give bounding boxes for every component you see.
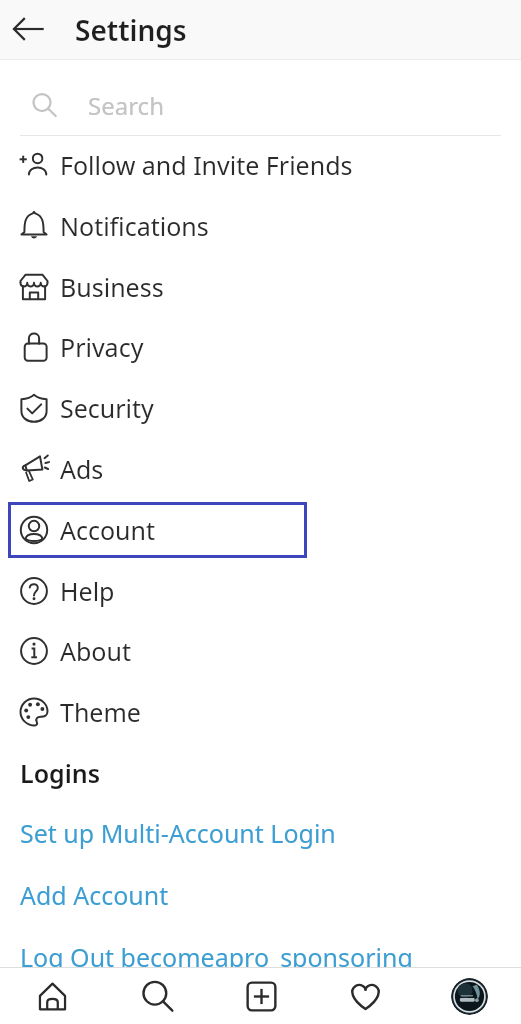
staticText: Follow and Invite Friends — [60, 148, 353, 182]
button[interactable]: New post — [209, 968, 313, 1024]
staticText: About — [60, 634, 131, 668]
staticText: Search — [88, 89, 164, 122]
staticText: Ads — [60, 452, 104, 486]
button[interactable]: Ads — [0, 438, 521, 499]
button[interactable]: Search — [0, 68, 521, 136]
staticText: Notifications — [60, 209, 209, 243]
staticText: Set up Multi-Account Login — [20, 816, 336, 850]
button[interactable]: Help — [0, 560, 521, 621]
button[interactable]: Security — [0, 377, 521, 438]
button[interactable]: Profile — [417, 968, 521, 1024]
staticText: Security — [60, 391, 154, 425]
staticText: Help — [60, 574, 115, 608]
button[interactable]: Privacy — [0, 316, 521, 377]
button[interactable]: About — [0, 620, 521, 681]
button[interactable]: Help — [0, 560, 521, 621]
button[interactable]: Set up Multi-Account Login — [0, 802, 521, 864]
button[interactable]: Theme — [0, 681, 521, 742]
staticText: Account — [60, 513, 156, 547]
button[interactable]: Business — [0, 256, 521, 317]
button[interactable]: Account — [8, 502, 307, 558]
staticText: Add Account — [20, 878, 169, 912]
button[interactable]: About — [0, 620, 521, 681]
button[interactable]: Log Out becomeapro_sponsoring — [0, 926, 521, 988]
button[interactable]: Theme — [0, 681, 521, 742]
staticText: Business — [60, 270, 164, 304]
button[interactable]: Activity — [313, 968, 417, 1024]
staticText: Theme — [60, 695, 141, 729]
button[interactable]: Add Account — [0, 864, 521, 926]
button[interactable]: Search — [105, 968, 209, 1024]
button[interactable]: Home — [0, 968, 105, 1024]
button[interactable]: Privacy — [0, 316, 521, 377]
button[interactable]: Account — [0, 499, 521, 560]
button[interactable]: Business — [0, 256, 521, 317]
staticText: Log Out becomeapro_sponsoring — [20, 940, 413, 974]
button[interactable]: Back — [0, 0, 60, 60]
staticText: Privacy — [60, 330, 144, 364]
staticText: Settings — [75, 11, 187, 49]
button[interactable]: Notifications — [0, 195, 521, 256]
staticText: Logins — [20, 756, 101, 790]
button[interactable]: Follow and Invite Friends — [0, 134, 521, 195]
button[interactable]: Security — [0, 377, 521, 438]
button[interactable]: Notifications — [0, 195, 521, 256]
button[interactable]: Ads — [0, 438, 521, 499]
button[interactable]: Follow and Invite Friends — [0, 134, 521, 195]
